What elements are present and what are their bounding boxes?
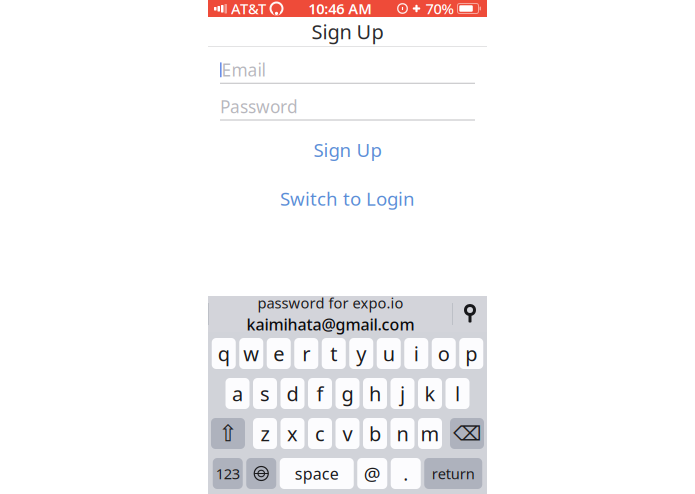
button[interactable]: v [335, 418, 359, 449]
staticText: b [369, 420, 381, 447]
staticText: kaimihata@gmail.com [246, 314, 414, 335]
button[interactable]: a [225, 378, 249, 409]
button[interactable]: f [308, 378, 332, 409]
button[interactable]: b [363, 418, 387, 449]
staticText: password for expo.io [257, 293, 403, 313]
staticText: i [414, 340, 419, 367]
button[interactable]: l [445, 378, 469, 409]
staticText: v [342, 420, 352, 447]
staticText: 10:46 AM [308, 0, 372, 18]
staticText: Sign Up [311, 18, 383, 45]
staticText: p [465, 340, 477, 367]
button[interactable]: password for expo.io [236, 293, 424, 335]
button[interactable]: Sign Up [220, 130, 475, 169]
staticText: ⌫ [453, 422, 481, 445]
staticText: AT&T [231, 0, 266, 18]
button[interactable]: o [432, 338, 456, 369]
button[interactable]: u [377, 338, 401, 369]
button[interactable]: Switch to Login [220, 179, 475, 218]
staticText: Email [222, 58, 266, 81]
button[interactable]: g [335, 378, 359, 409]
button[interactable]: t [322, 338, 346, 369]
staticText: k [424, 380, 435, 407]
button[interactable]: z [253, 418, 277, 449]
staticText: 70% [425, 0, 453, 18]
button[interactable]: d [280, 378, 304, 409]
button[interactable]: k [418, 378, 442, 409]
button[interactable]: p [459, 338, 483, 369]
button[interactable]: space [280, 458, 354, 489]
staticText: 123 [216, 464, 240, 483]
staticText: Sign Up [313, 137, 381, 162]
staticText: d [286, 380, 298, 407]
staticText: h [369, 380, 381, 407]
button[interactable]: m [418, 418, 442, 449]
staticText: a [232, 380, 243, 407]
staticText: m [420, 420, 439, 447]
button[interactable]: q [212, 338, 236, 369]
staticText: Switch to Login [280, 186, 415, 211]
staticText: e [273, 340, 284, 367]
button[interactable]: r [294, 338, 318, 369]
staticText: c [315, 420, 325, 447]
button[interactable]: Shift [211, 418, 245, 449]
button[interactable]: Next keyboard [246, 458, 276, 489]
staticText: q [218, 340, 230, 367]
staticText: l [455, 380, 460, 407]
staticText: . [403, 461, 408, 486]
staticText: space [295, 463, 339, 484]
staticText: @ [364, 461, 381, 486]
staticText: w [243, 340, 259, 367]
button[interactable]: 123 [213, 458, 243, 489]
button[interactable]: Delete [450, 418, 484, 449]
staticText: y [356, 340, 366, 367]
staticText: Password [220, 95, 298, 118]
staticText: ⇧ [218, 421, 237, 446]
button[interactable]: h [363, 378, 387, 409]
staticText: g [341, 380, 353, 407]
staticText: return [432, 464, 475, 483]
button[interactable]: y [349, 338, 373, 369]
button[interactable]: . [391, 458, 421, 489]
button[interactable]: i [404, 338, 428, 369]
button[interactable]: w [239, 338, 263, 369]
staticText: u [383, 340, 395, 367]
button[interactable]: return [424, 458, 482, 489]
staticText: z [260, 420, 269, 447]
staticText: j [400, 380, 405, 407]
button[interactable]: c [308, 418, 332, 449]
staticText: s [260, 380, 270, 407]
staticText: n [396, 420, 408, 447]
button[interactable]: @ [357, 458, 387, 489]
button[interactable]: s [253, 378, 277, 409]
staticText: r [302, 340, 310, 367]
staticText: o [438, 340, 450, 367]
button[interactable]: e [267, 338, 291, 369]
staticText: f [316, 380, 323, 407]
button[interactable]: n [390, 418, 414, 449]
button[interactable]: j [390, 378, 414, 409]
staticText: t [330, 340, 337, 367]
button[interactable]: x [280, 418, 304, 449]
button[interactable]: Passwords [453, 305, 487, 322]
staticText: x [287, 420, 298, 447]
